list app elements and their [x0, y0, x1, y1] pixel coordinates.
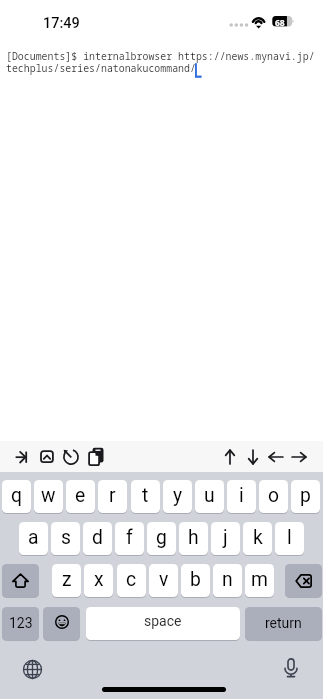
button[interactable]: m: [245, 564, 274, 597]
staticText: j: [223, 526, 228, 549]
button[interactable]: d: [83, 522, 112, 555]
button[interactable]: u: [195, 480, 224, 513]
button[interactable]: 123: [2, 607, 39, 640]
button[interactable]: y: [163, 480, 192, 513]
button[interactable]: f: [115, 522, 144, 555]
button[interactable]: History: [58, 444, 84, 470]
staticText: a: [28, 526, 39, 549]
button[interactable]: l: [275, 522, 304, 555]
button[interactable]: o: [259, 480, 288, 513]
button[interactable]: Dictation: [279, 656, 303, 680]
staticText: 17:49: [43, 15, 80, 32]
button[interactable]: p: [291, 480, 320, 513]
staticText: n: [222, 568, 233, 591]
button[interactable]: c: [117, 564, 146, 597]
button[interactable]: Change keyboard: [20, 657, 44, 681]
button[interactable]: x: [84, 564, 113, 597]
staticText: l: [287, 526, 292, 549]
button[interactable]: q: [2, 480, 31, 513]
button[interactable]: w: [34, 480, 63, 513]
staticText: 68: [275, 17, 285, 29]
staticText: m: [251, 568, 268, 591]
button[interactable]: s: [51, 522, 80, 555]
button[interactable]: a: [19, 522, 48, 555]
button[interactable]: e: [66, 480, 95, 513]
staticText: b: [190, 568, 201, 591]
button[interactable]: space: [86, 607, 240, 640]
staticText: z: [62, 568, 72, 591]
button[interactable]: Arrow right: [286, 444, 312, 470]
button[interactable]: t: [131, 480, 160, 513]
button[interactable]: Arrow down: [240, 444, 266, 470]
button[interactable]: Tab: [10, 444, 36, 470]
button[interactable]: i: [227, 480, 256, 513]
button[interactable]: Control: [34, 444, 60, 470]
staticText: v: [159, 568, 169, 591]
button[interactable]: r: [98, 480, 127, 513]
staticText: h: [188, 526, 199, 549]
button[interactable]: g: [147, 522, 176, 555]
button[interactable]: Shift: [2, 564, 39, 597]
button[interactable]: h: [179, 522, 208, 555]
staticText: s: [61, 526, 71, 549]
staticText: e: [75, 484, 86, 507]
staticText: o: [268, 484, 280, 507]
staticText: u: [204, 484, 215, 507]
staticText: d: [92, 526, 103, 549]
staticText: y: [173, 484, 183, 507]
button[interactable]: n: [213, 564, 242, 597]
button[interactable]: Paste: [83, 444, 109, 470]
staticText: c: [126, 568, 137, 591]
button[interactable]: return: [245, 607, 322, 640]
staticText: p: [300, 484, 311, 507]
button[interactable]: z: [52, 564, 81, 597]
staticText: r: [109, 484, 116, 507]
staticText: i: [239, 484, 244, 507]
staticText: g: [156, 526, 167, 549]
staticText: x: [94, 568, 104, 591]
staticText: w: [41, 484, 56, 507]
button[interactable]: Arrow up: [217, 444, 243, 470]
staticText: [Documents]$ internalbrowser https://new…: [6, 49, 319, 75]
staticText: q: [11, 484, 22, 507]
staticText: f: [126, 526, 133, 549]
button[interactable]: v: [149, 564, 178, 597]
staticText: 123: [9, 615, 33, 631]
staticText: space: [144, 613, 182, 629]
button[interactable]: Arrow left: [263, 444, 289, 470]
button[interactable]: Emoji: [43, 607, 80, 640]
staticText: t: [142, 484, 149, 507]
staticText: k: [253, 526, 263, 549]
button[interactable]: Backspace: [285, 564, 322, 597]
staticText: return: [265, 615, 302, 631]
button[interactable]: j: [211, 522, 240, 555]
button[interactable]: k: [243, 522, 272, 555]
button[interactable]: b: [181, 564, 210, 597]
